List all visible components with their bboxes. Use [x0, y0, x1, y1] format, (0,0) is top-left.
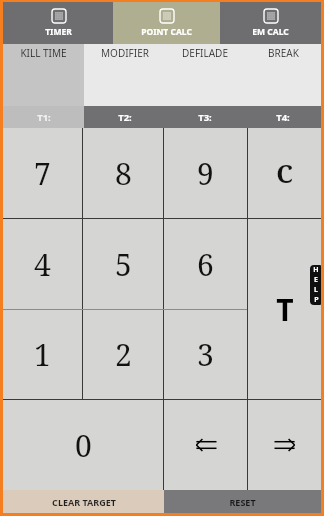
staticText: TIMER — [45, 26, 72, 38]
staticText: L — [314, 285, 318, 295]
button[interactable]: Forward — [248, 400, 321, 490]
button[interactable]: 1 — [3, 309, 82, 399]
button[interactable]: T1: — [3, 106, 84, 128]
button[interactable]: T3: — [165, 106, 245, 128]
button[interactable]: 0 — [3, 400, 163, 490]
button[interactable]: Backspace — [164, 400, 247, 490]
staticText: 0 — [75, 425, 92, 466]
staticText: DEFILADE — [182, 46, 228, 60]
button[interactable]: 8 — [83, 128, 163, 218]
staticText: C — [276, 156, 293, 190]
staticText: 1 — [34, 334, 51, 375]
button[interactable]: CLEAR TARGET — [3, 490, 164, 513]
staticText: P — [314, 295, 319, 305]
staticText: POINT CALC — [141, 26, 192, 38]
staticText: 9 — [197, 153, 214, 194]
button[interactable]: 4 — [3, 219, 82, 309]
staticText: T1: — [37, 111, 51, 124]
staticText: CLEAR TARGET — [52, 496, 116, 508]
staticText: RESET — [229, 496, 256, 508]
staticText: BREAK — [268, 46, 299, 60]
staticText: T2: — [118, 111, 132, 124]
staticText: 8 — [115, 153, 132, 194]
staticText: T4: — [276, 111, 290, 124]
button[interactable]: KILL TIME — [3, 44, 84, 106]
button[interactable]: 6 — [164, 219, 247, 309]
button[interactable]: 2 — [83, 309, 163, 399]
button[interactable]: RESET — [164, 490, 321, 513]
staticText: EM CALC — [252, 26, 289, 38]
staticText: H — [313, 265, 319, 275]
button[interactable]: EM CALC — [220, 2, 321, 44]
staticText: KILL TIME — [20, 46, 67, 60]
button[interactable]: 3 — [164, 309, 247, 399]
button[interactable]: C — [248, 128, 321, 218]
staticText: 4 — [34, 244, 51, 285]
staticText: 6 — [197, 244, 214, 285]
button[interactable]: 9 — [164, 128, 247, 218]
staticText: T3: — [198, 111, 212, 124]
button[interactable]: POINT CALC — [113, 2, 220, 44]
staticText: E — [314, 275, 318, 285]
button[interactable]: TIMER — [3, 2, 113, 44]
staticText: 3 — [197, 334, 214, 375]
staticText: 5 — [115, 244, 132, 285]
button[interactable]: MODIFIER — [84, 44, 165, 106]
staticText: T — [276, 289, 294, 330]
staticText: 7 — [34, 153, 51, 194]
button[interactable]: 5 — [83, 219, 163, 309]
button[interactable]: 7 — [3, 128, 82, 218]
staticText: MODIFIER — [101, 46, 149, 60]
button[interactable]: BREAK — [245, 44, 321, 106]
button[interactable]: T4: — [245, 106, 321, 128]
staticText: 2 — [115, 334, 132, 375]
button[interactable]: DEFILADE — [165, 44, 245, 106]
button[interactable]: T2: — [84, 106, 165, 128]
button[interactable]: T — [248, 219, 321, 399]
button[interactable]: Help — [310, 265, 321, 305]
